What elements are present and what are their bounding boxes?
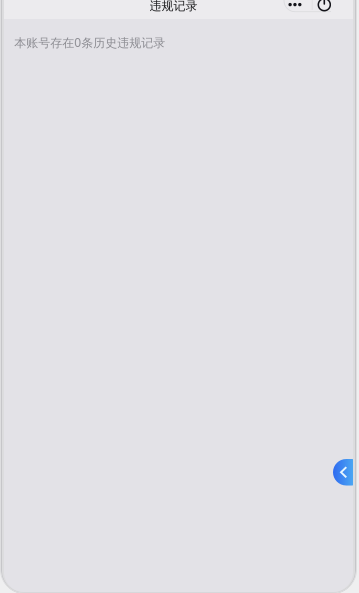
button[interactable]: 返回 bbox=[333, 459, 359, 485]
button[interactable]: 更多 bbox=[281, 0, 309, 16]
staticText: 违规记录 bbox=[149, 0, 197, 13]
staticText: 本账号存在0条历史违规记录 bbox=[14, 34, 165, 50]
button[interactable]: 关闭 bbox=[310, 0, 338, 16]
